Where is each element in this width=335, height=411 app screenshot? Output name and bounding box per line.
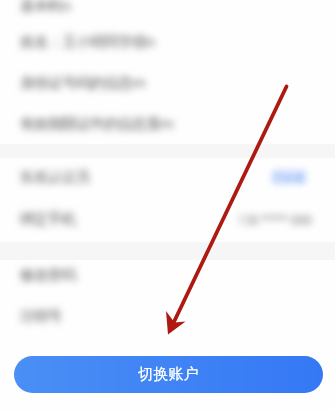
staticText: 注销号 [20,307,62,326]
staticText: 138 **** 888 [237,210,312,229]
staticText: 绑定手机 [20,210,76,229]
staticText: 实名认证员 [20,168,90,187]
button[interactable]: 姓名：王小明同学很n [0,20,335,62]
staticText: 身份证号码的信息m [20,72,146,92]
button[interactable]: 实名认证员 [0,158,335,196]
button[interactable]: 修改密码 [0,260,335,290]
button[interactable]: 有效期限证件的信息显m [0,102,335,144]
button[interactable]: 身份证号码的信息m [0,62,335,102]
button[interactable]: 基本料n [0,0,335,25]
button[interactable]: 切换账户 [14,356,323,393]
other: Annotation arrow [0,0,335,411]
button[interactable]: 注销号 [0,290,335,343]
button[interactable]: 绑定手机 [0,196,335,242]
staticText: 切换账户 [138,365,199,384]
staticText: 姓名：王小明同学很n [20,31,155,51]
staticText: 有效期限证件的信息显m [20,113,174,133]
staticText: 基本料n [20,0,71,15]
staticText: 已认证 [273,170,305,184]
staticText: 修改密码 [20,266,76,285]
